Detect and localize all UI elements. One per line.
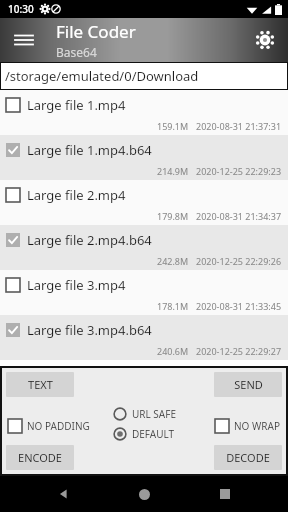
button[interactable]: ENCODE (6, 445, 74, 470)
button[interactable]: SEND (214, 372, 282, 397)
button[interactable]: Large file 2.mp4.b64 (0, 225, 288, 270)
button[interactable]: /storage/emulated/0/Download (0, 62, 288, 90)
button[interactable]: DECODE (214, 445, 282, 470)
staticText: 2020-12-25 22:29:27 (196, 345, 282, 357)
staticText: 2020-08-31 21:37:31 (196, 120, 282, 132)
staticText: 159.1M (157, 120, 189, 132)
staticText: ENCODE (18, 450, 62, 465)
staticText: 179.8M (157, 210, 189, 222)
staticText: 242.8M (157, 255, 189, 267)
staticText: 240.6M (157, 345, 189, 357)
staticText: NO WRAP (234, 419, 280, 433)
button[interactable]: Recents (208, 477, 242, 511)
staticText: Base64 (56, 44, 97, 60)
button[interactable]: Home (127, 477, 161, 511)
staticText: 2020-08-31 21:33:45 (196, 300, 282, 312)
staticText: NO PADDING (27, 419, 90, 433)
button[interactable]: URL SAFE (113, 407, 176, 421)
button[interactable]: TEXT (6, 372, 74, 397)
button[interactable]: Large file 3.mp4 (0, 270, 288, 315)
button[interactable]: DEFAULT (113, 427, 175, 441)
staticText: Large file 1.mp4 (27, 96, 126, 114)
button[interactable]: Back (47, 477, 81, 511)
staticText: URL SAFE (132, 407, 176, 421)
staticText: DEFAULT (132, 427, 175, 441)
staticText: DECODE (226, 450, 270, 465)
staticText: 2020-08-31 21:34:37 (196, 210, 282, 222)
staticText: /storage/emulated/0/Download (5, 67, 199, 85)
staticText: 2020-12-25 22:29:26 (196, 255, 282, 267)
button[interactable]: Menu (8, 24, 40, 56)
staticText: TEXT (28, 377, 53, 392)
button[interactable]: Settings (248, 23, 282, 57)
staticText: 178.1M (157, 300, 189, 312)
staticText: Large file 2.mp4.b64 (27, 231, 152, 249)
button[interactable]: Large file 1.mp4 (0, 90, 288, 135)
staticText: Large file 2.mp4 (27, 186, 126, 204)
button[interactable]: Large file 3.mp4.b64 (0, 315, 288, 360)
staticText: File Coder (56, 20, 136, 43)
staticText: Large file 3.mp4 (27, 276, 126, 294)
button[interactable]: NO PADDING (8, 419, 90, 433)
button[interactable]: Large file 1.mp4.b64 (0, 135, 288, 180)
staticText: 10:30 (8, 2, 34, 16)
button[interactable]: NO WRAP (215, 419, 280, 433)
staticText: Large file 1.mp4.b64 (27, 141, 152, 159)
staticText: 214.9M (157, 165, 189, 177)
button[interactable]: Large file 2.mp4 (0, 180, 288, 225)
staticText: Large file 3.mp4.b64 (27, 321, 152, 339)
staticText: SEND (234, 377, 263, 392)
staticText: 2020-12-25 22:29:23 (196, 165, 282, 177)
